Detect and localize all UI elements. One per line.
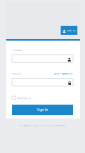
staticText: SIGN IN bbox=[67, 29, 76, 32]
button[interactable]: SIGN IN bbox=[61, 26, 77, 35]
button[interactable]: Sign In bbox=[12, 105, 73, 115]
staticText: Password bbox=[12, 72, 21, 75]
staticText: Sign In bbox=[37, 108, 48, 112]
staticText: Lost Password? bbox=[54, 72, 73, 75]
staticText: Username bbox=[12, 48, 22, 51]
staticText: Remember Me bbox=[17, 96, 31, 99]
button[interactable]: Remember Me bbox=[12, 96, 73, 100]
staticText: © Copyright 2014. All Rights Reserved. bbox=[18, 124, 66, 127]
button[interactable]: Lost Password? bbox=[54, 72, 73, 75]
